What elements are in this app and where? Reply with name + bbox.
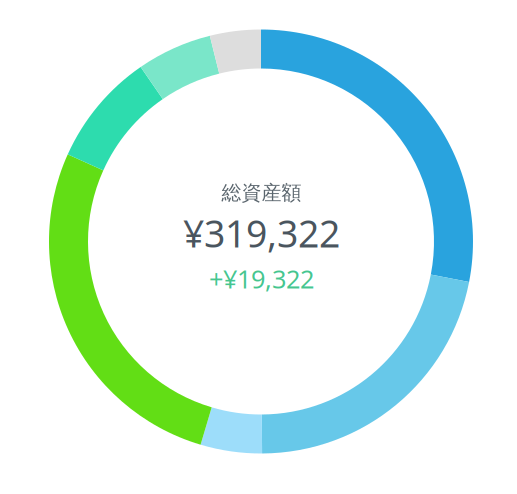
staticText: +¥19,322: [209, 262, 314, 295]
staticText: 総資産額: [221, 181, 301, 205]
button[interactable]: 総資産額: [183, 181, 340, 295]
staticText: ¥319,322: [183, 208, 340, 258]
